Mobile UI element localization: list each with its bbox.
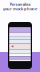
staticText: Personalise (9, 2, 30, 7)
staticText: your mock phone (3, 6, 37, 11)
